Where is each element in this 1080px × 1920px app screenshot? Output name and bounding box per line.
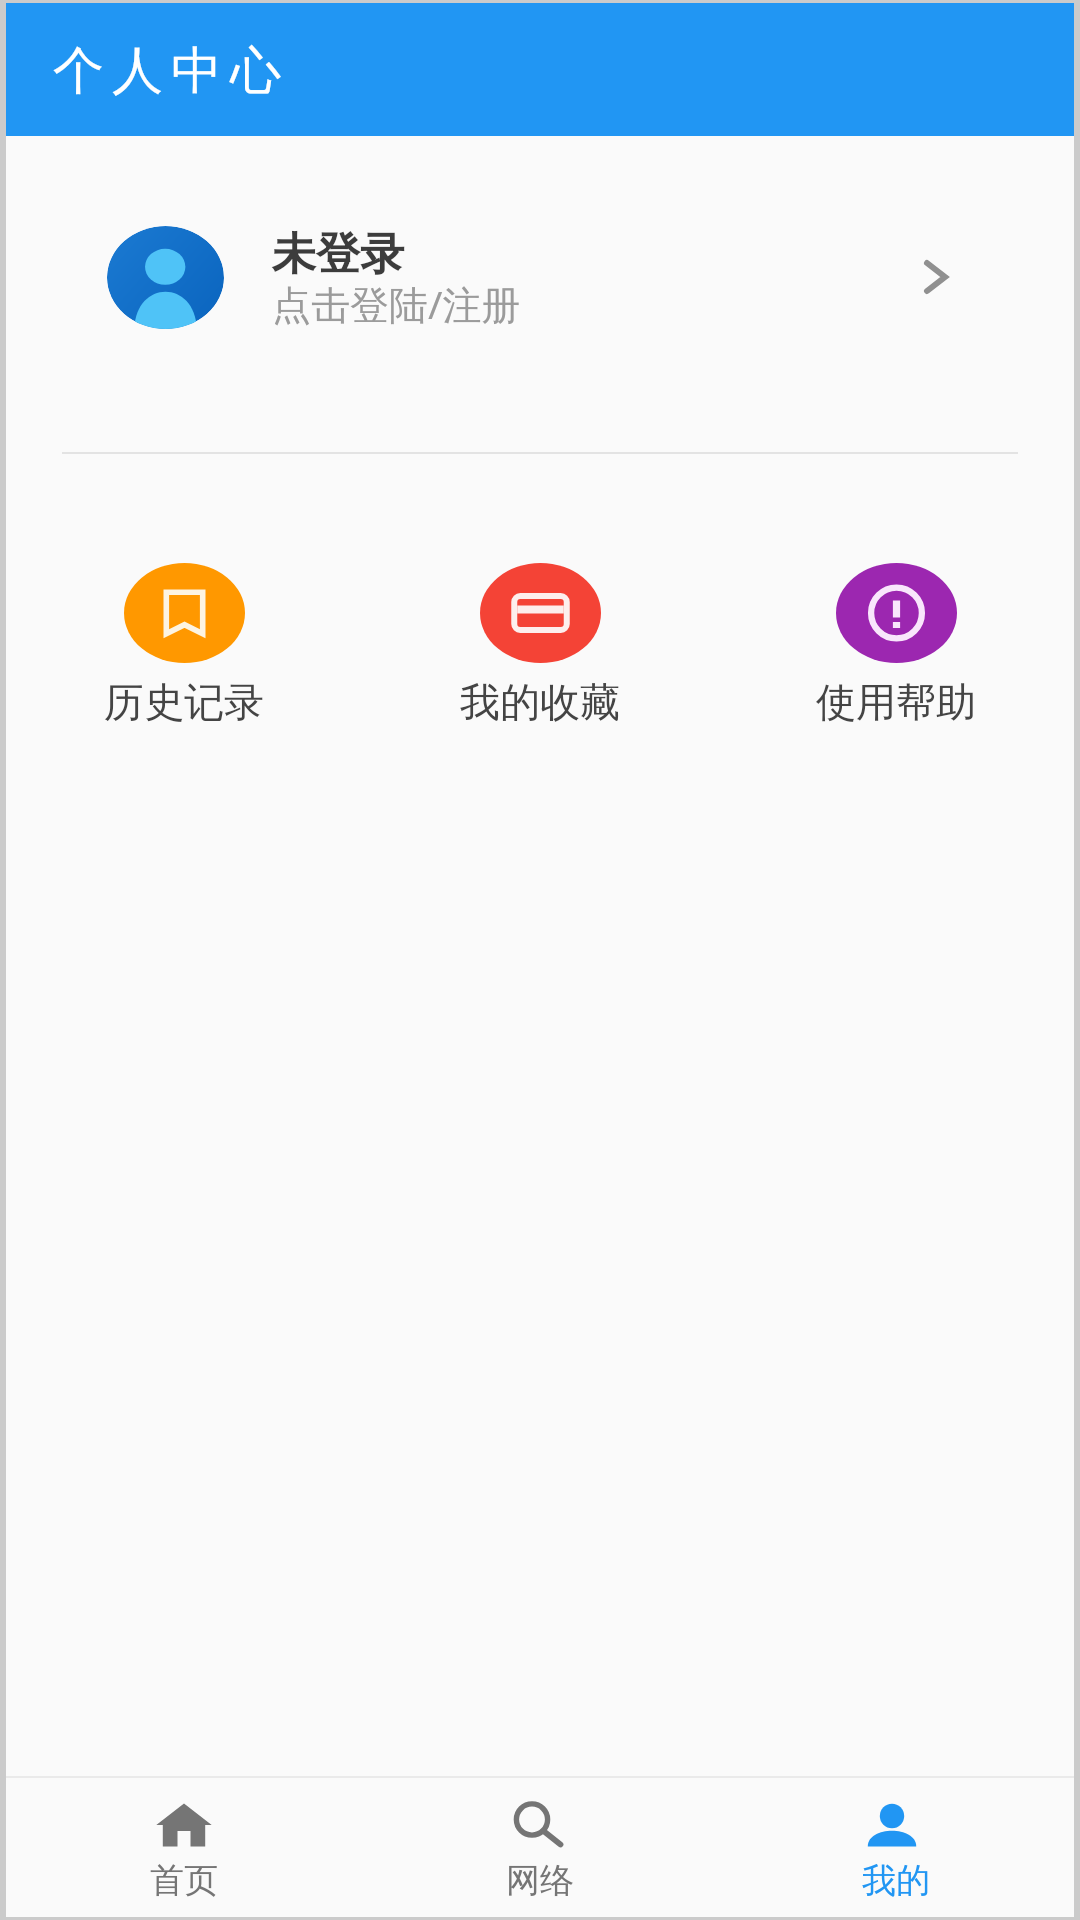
button[interactable]: 使用帮助 — [718, 563, 1074, 727]
staticText: 网络 — [506, 1859, 574, 1902]
button[interactable]: 我的收藏 — [362, 563, 718, 727]
button[interactable]: Open login — [893, 234, 979, 320]
button[interactable]: 我的 — [718, 1778, 1074, 1902]
staticText: 首页 — [150, 1859, 218, 1902]
staticText: 使用帮助 — [816, 677, 976, 727]
staticText: 未登录 — [272, 227, 404, 282]
staticText: 我的 — [862, 1859, 930, 1902]
staticText: 历史记录 — [104, 677, 264, 727]
staticText: 个人中心 — [49, 39, 285, 103]
staticText: 点击登陆/注册 — [272, 277, 521, 330]
button[interactable]: 未登录 — [6, 192, 1074, 362]
button[interactable]: 网络 — [362, 1778, 718, 1902]
button[interactable]: 首页 — [6, 1778, 362, 1902]
button[interactable]: 历史记录 — [6, 563, 362, 727]
staticText: 我的收藏 — [460, 677, 620, 727]
